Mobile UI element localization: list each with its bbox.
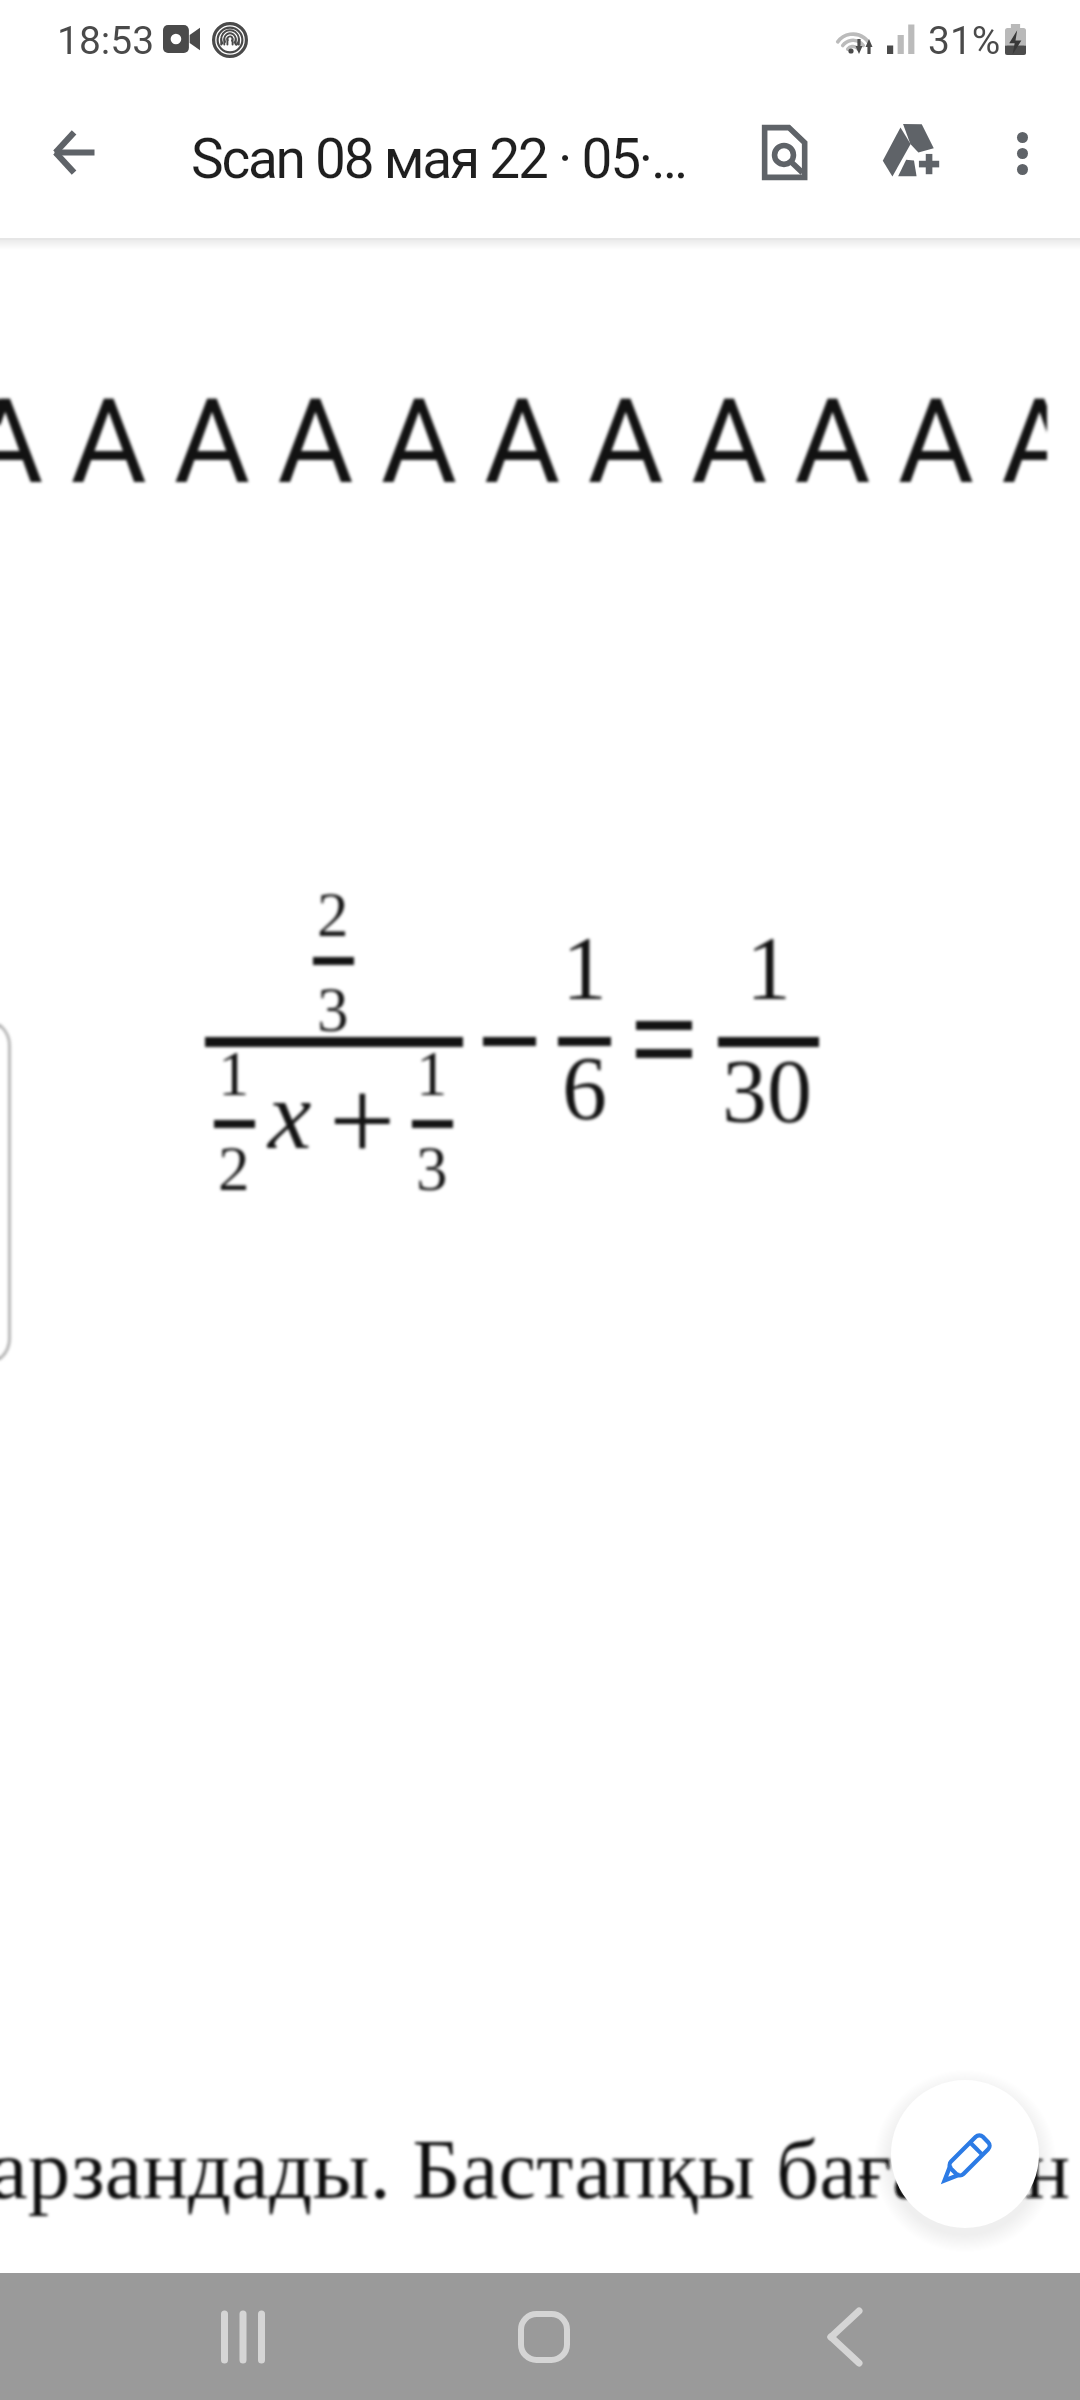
- staticText: AAAAAAAAAAAAA: [0, 373, 1047, 510]
- staticText: 1: [416, 1039, 1080, 1109]
- staticText: арзандады. Бастапқы бағасына: [0, 2122, 1070, 2216]
- staticText: +: [329, 1056, 1080, 1187]
- button[interactable]: Add to Drive: [856, 97, 960, 201]
- staticText: Scan 08 мая 22 · 05·…: [191, 127, 891, 191]
- button[interactable]: Edit: [891, 2080, 1039, 2228]
- button[interactable]: Back: [762, 2273, 928, 2400]
- staticText: 3: [416, 1134, 1080, 1204]
- staticText: 18:53: [57, 18, 1080, 64]
- button[interactable]: Home: [461, 2273, 627, 2400]
- staticText: x: [268, 1061, 1080, 1170]
- staticText: 2: [218, 1134, 1080, 1204]
- staticText: 1: [746, 919, 1080, 1019]
- staticText: 1: [218, 1039, 1080, 1109]
- staticText: 6: [562, 1039, 1080, 1139]
- staticText: 3: [317, 975, 1080, 1045]
- staticText: 2: [317, 880, 1080, 950]
- staticText: 30: [722, 1042, 1080, 1142]
- button[interactable]: More options: [970, 101, 1074, 205]
- staticText: 31%: [928, 18, 1080, 64]
- staticText: 1: [562, 919, 1080, 1019]
- button[interactable]: Back: [22, 100, 126, 204]
- button[interactable]: Find in document: [732, 100, 836, 204]
- button[interactable]: Recents: [160, 2273, 326, 2400]
